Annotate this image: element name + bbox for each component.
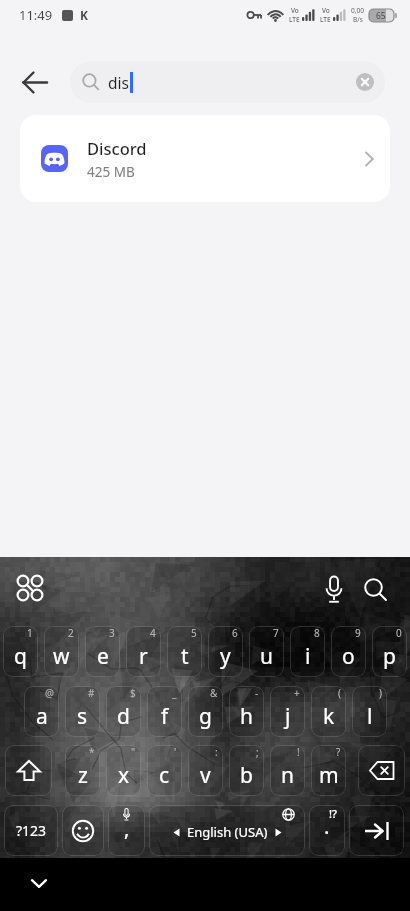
button[interactable]: f (147, 686, 182, 737)
staticText: LTE (289, 15, 300, 24)
staticText: 8 (314, 626, 320, 640)
button[interactable]: r (126, 626, 161, 677)
staticText: @ (45, 686, 54, 700)
staticText: + (294, 686, 300, 700)
button[interactable]: l (352, 686, 387, 737)
button[interactable]: o (331, 626, 366, 677)
button[interactable]: n (270, 745, 305, 796)
staticText: ! (297, 745, 300, 759)
staticText: 65 (376, 10, 386, 22)
staticText: y (220, 642, 231, 671)
staticText: q (14, 642, 27, 671)
staticText: B/s (353, 15, 363, 24)
button[interactable]: m (311, 745, 346, 796)
button[interactable]: g (188, 686, 223, 737)
button[interactable]: t (167, 626, 202, 677)
staticText: ( (338, 686, 341, 700)
button[interactable] (0, 61, 70, 103)
button[interactable]: i (290, 626, 325, 677)
button[interactable] (323, 576, 345, 604)
staticText: $ (130, 686, 136, 700)
staticText: 4 (150, 626, 156, 640)
staticText: o (342, 642, 355, 671)
button[interactable]: dis (70, 61, 385, 103)
button[interactable]: j (270, 686, 305, 737)
staticText: 6 (232, 626, 238, 640)
button[interactable]: . (309, 805, 345, 856)
staticText: l (367, 702, 373, 731)
staticText: K (80, 7, 88, 23)
staticText: 0,00 (351, 6, 364, 15)
staticText: z (78, 761, 88, 790)
button[interactable]: y (208, 626, 243, 677)
staticText: " (131, 745, 136, 759)
staticText: ' (174, 745, 177, 759)
staticText: 11:49 (19, 6, 53, 24)
button[interactable]: d (106, 686, 141, 737)
staticText: 3 (109, 626, 115, 640)
staticText: s (77, 702, 88, 731)
button[interactable]: , (108, 805, 145, 856)
button[interactable]: p (372, 626, 407, 677)
staticText: 1 (27, 626, 33, 640)
staticText: 9 (355, 626, 361, 640)
staticText: t (181, 642, 189, 671)
button[interactable]: q (3, 626, 38, 677)
staticText: Discord (87, 137, 147, 159)
button[interactable]: w (44, 626, 79, 677)
staticText: e (97, 642, 109, 671)
staticText: a (36, 702, 48, 731)
staticText: # (88, 686, 95, 700)
staticText: ; (256, 745, 259, 759)
staticText: Vo (291, 6, 299, 15)
button[interactable]: c (147, 745, 182, 796)
button[interactable] (15, 573, 45, 603)
staticText: 2 (68, 626, 74, 640)
staticText: w (53, 642, 70, 671)
staticText: . (324, 813, 330, 840)
button[interactable]: u (249, 626, 284, 677)
button[interactable] (356, 73, 374, 91)
staticText: 425 MB (87, 163, 135, 181)
button[interactable]: ?123 (4, 805, 58, 856)
button[interactable]: v (188, 745, 223, 796)
button[interactable]: English (USA) (149, 805, 305, 856)
staticText: 5 (191, 626, 197, 640)
staticText: ? (336, 745, 341, 759)
staticText: k (323, 702, 335, 731)
staticText: h (240, 702, 253, 731)
button[interactable]: z (65, 745, 100, 796)
staticText: g (199, 702, 212, 731)
button[interactable]: s (65, 686, 100, 737)
button[interactable]: x (106, 745, 141, 796)
staticText: 0 (396, 626, 402, 640)
button[interactable] (18, 862, 60, 904)
staticText: - (255, 686, 259, 700)
staticText: m (319, 761, 339, 790)
staticText: , (124, 815, 130, 842)
staticText: Vo (322, 6, 330, 15)
staticText: i (305, 642, 311, 671)
staticText: x (118, 761, 130, 790)
staticText: n (281, 761, 294, 790)
button[interactable] (362, 576, 390, 604)
button[interactable]: e (85, 626, 120, 677)
button[interactable] (62, 805, 104, 856)
staticText: 7 (273, 626, 279, 640)
staticText: : (215, 745, 218, 759)
button[interactable] (349, 805, 404, 856)
staticText: p (383, 642, 396, 671)
staticText: _ (172, 686, 177, 700)
staticText: English (USA) (187, 823, 268, 841)
staticText: !? (329, 806, 337, 821)
staticText: LTE (320, 15, 331, 24)
button[interactable]: b (229, 745, 264, 796)
button[interactable] (5, 745, 52, 796)
button[interactable] (358, 745, 405, 796)
staticText: r (139, 642, 148, 671)
staticText: j (285, 702, 291, 731)
button[interactable]: h (229, 686, 264, 737)
button[interactable]: k (311, 686, 346, 737)
button[interactable]: a (24, 686, 59, 737)
button[interactable]: Discord (20, 115, 390, 202)
